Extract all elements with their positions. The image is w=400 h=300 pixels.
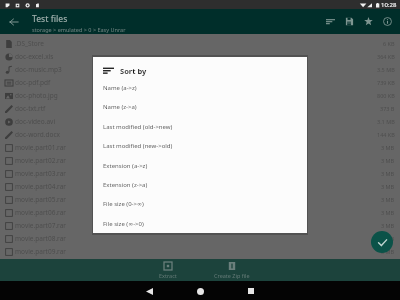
button[interactable]: Back <box>140 282 158 300</box>
staticText: Last modified (old->new) <box>103 123 173 131</box>
staticText: 3.5 MB <box>377 66 395 73</box>
staticText: 3 MB <box>381 183 395 190</box>
button[interactable]: Home <box>191 282 209 300</box>
staticText: doc-pdf.pdf <box>15 78 51 87</box>
button[interactable]: doc-music.mp3 <box>0 63 400 76</box>
staticText: File size (0->∞) <box>103 200 144 208</box>
staticText: storage > emulated > 0 > Easy Unrar <box>32 26 126 33</box>
staticText: Last modified (new->old) <box>103 142 173 150</box>
button[interactable]: Name (z->a) <box>93 97 307 116</box>
button[interactable]: movie.part03.rar <box>0 167 400 180</box>
button[interactable]: File size (0->∞) <box>93 194 307 213</box>
button[interactable]: doc-excel.xls <box>0 50 400 63</box>
button[interactable]: Extract <box>136 259 200 281</box>
staticText: movie.part06.rar <box>15 208 67 217</box>
button[interactable]: Recents <box>242 282 260 300</box>
button[interactable]: doc-photo.jpg <box>0 89 400 102</box>
staticText: 3 MB <box>381 222 395 229</box>
button[interactable]: Save <box>340 9 359 34</box>
staticText: movie.part07.rar <box>15 221 67 230</box>
button[interactable]: movie.part02.rar <box>0 154 400 167</box>
button[interactable]: movie.part01.rar <box>0 141 400 154</box>
staticText: doc-word.docx <box>15 130 60 139</box>
button[interactable]: .DS_Store <box>0 37 400 50</box>
staticText: movie.part04.rar <box>15 182 67 191</box>
button[interactable]: movie.part06.rar <box>0 206 400 219</box>
staticText: .DS_Store <box>15 39 45 48</box>
button[interactable]: movie.part04.rar <box>0 180 400 193</box>
button[interactable]: File size (∞->0) <box>93 214 307 233</box>
staticText: 739 KB <box>377 79 395 86</box>
staticText: 800 KB <box>377 92 395 99</box>
staticText: doc-txt.rtf <box>15 104 46 113</box>
staticText: File size (∞->0) <box>103 220 144 228</box>
staticText: 3 MB <box>381 157 395 164</box>
staticText: Test files <box>32 13 68 25</box>
staticText: 3 MB <box>381 248 395 255</box>
button[interactable]: Extension (a->z) <box>93 156 307 175</box>
button[interactable]: movie.part08.rar <box>0 232 400 245</box>
staticText: 144 KB <box>377 131 395 138</box>
button[interactable]: doc-txt.rtf <box>0 102 400 115</box>
staticText: doc-music.mp3 <box>15 65 62 74</box>
staticText: Sort by <box>120 66 147 76</box>
staticText: Extension (z->a) <box>103 181 148 189</box>
button[interactable]: Last modified (old->new) <box>93 117 307 136</box>
button[interactable]: movie.part09.rar <box>0 245 400 258</box>
staticText: 3.1 MB <box>377 118 395 125</box>
staticText: movie.part05.rar <box>15 195 67 204</box>
staticText: Create Zip file <box>214 272 250 279</box>
staticText: doc-video.avi <box>15 117 56 126</box>
button[interactable]: movie.part07.rar <box>0 219 400 232</box>
button[interactable]: Favorite <box>359 9 378 34</box>
staticText: Extract <box>159 272 177 279</box>
button[interactable]: Name (a->z) <box>93 78 307 97</box>
staticText: 3 MB <box>381 170 395 177</box>
staticText: Name (z->a) <box>103 103 137 111</box>
button[interactable]: doc-video.avi <box>0 115 400 128</box>
staticText: movie.part08.rar <box>15 234 67 243</box>
staticText: 3 MB <box>381 144 395 151</box>
button[interactable]: movie.part05.rar <box>0 193 400 206</box>
button[interactable]: doc-word.docx <box>0 128 400 141</box>
button[interactable]: Navigate up <box>0 9 27 34</box>
button[interactable]: Extension (z->a) <box>93 175 307 194</box>
staticText: 6 KB <box>383 40 395 47</box>
staticText: 364 KB <box>377 53 395 60</box>
staticText: movie.part09.rar <box>15 247 67 256</box>
staticText: doc-excel.xls <box>15 52 54 61</box>
staticText: movie.part02.rar <box>15 156 67 165</box>
staticText: 3 MB <box>381 235 395 242</box>
button[interactable]: Last modified (new->old) <box>93 136 307 155</box>
staticText: Extension (a->z) <box>103 162 148 170</box>
button[interactable]: Confirm selection <box>371 231 393 253</box>
staticText: Name (a->z) <box>103 84 137 92</box>
staticText: 10:28 <box>381 1 397 9</box>
staticText: 373 B <box>380 105 395 112</box>
staticText: movie.part01.rar <box>15 143 67 152</box>
button[interactable]: doc-pdf.pdf <box>0 76 400 89</box>
button[interactable]: Sort <box>321 9 340 34</box>
staticText: movie.part03.rar <box>15 169 67 178</box>
staticText: 3 MB <box>381 209 395 216</box>
staticText: doc-photo.jpg <box>15 91 58 100</box>
button[interactable]: Info <box>378 9 397 34</box>
staticText: 3 MB <box>381 196 395 203</box>
button[interactable]: Create Zip file <box>200 259 264 281</box>
